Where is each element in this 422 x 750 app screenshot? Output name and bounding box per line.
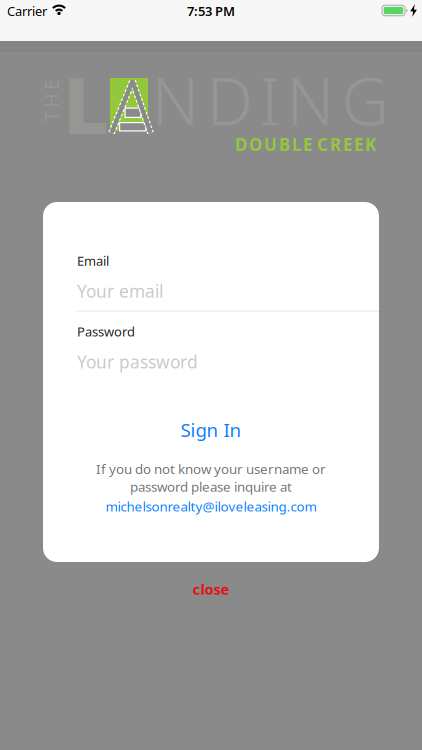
staticText: Your email	[77, 280, 163, 303]
staticText: Carrier	[7, 2, 47, 20]
button[interactable]: michelsonrealty@iloveleasing.com	[105, 497, 316, 515]
staticText: 7:53 PM	[187, 2, 235, 20]
staticText: Email	[77, 252, 109, 270]
button[interactable]: close	[192, 579, 229, 599]
staticText: michelsonrealty@iloveleasing.com	[105, 497, 316, 515]
staticText: N D I N G	[151, 57, 388, 143]
staticText: password please inquire at	[130, 478, 292, 495]
staticText: T H E	[29, 87, 72, 114]
staticText: Password	[77, 323, 135, 340]
staticText: close	[192, 579, 229, 599]
staticText: Sign In	[180, 417, 241, 442]
staticText: If you do not know your username or	[96, 460, 326, 478]
staticText: D O U B L E C R E E K	[235, 133, 376, 156]
staticText: Your password	[77, 350, 198, 373]
button[interactable]: Sign In	[180, 417, 241, 442]
